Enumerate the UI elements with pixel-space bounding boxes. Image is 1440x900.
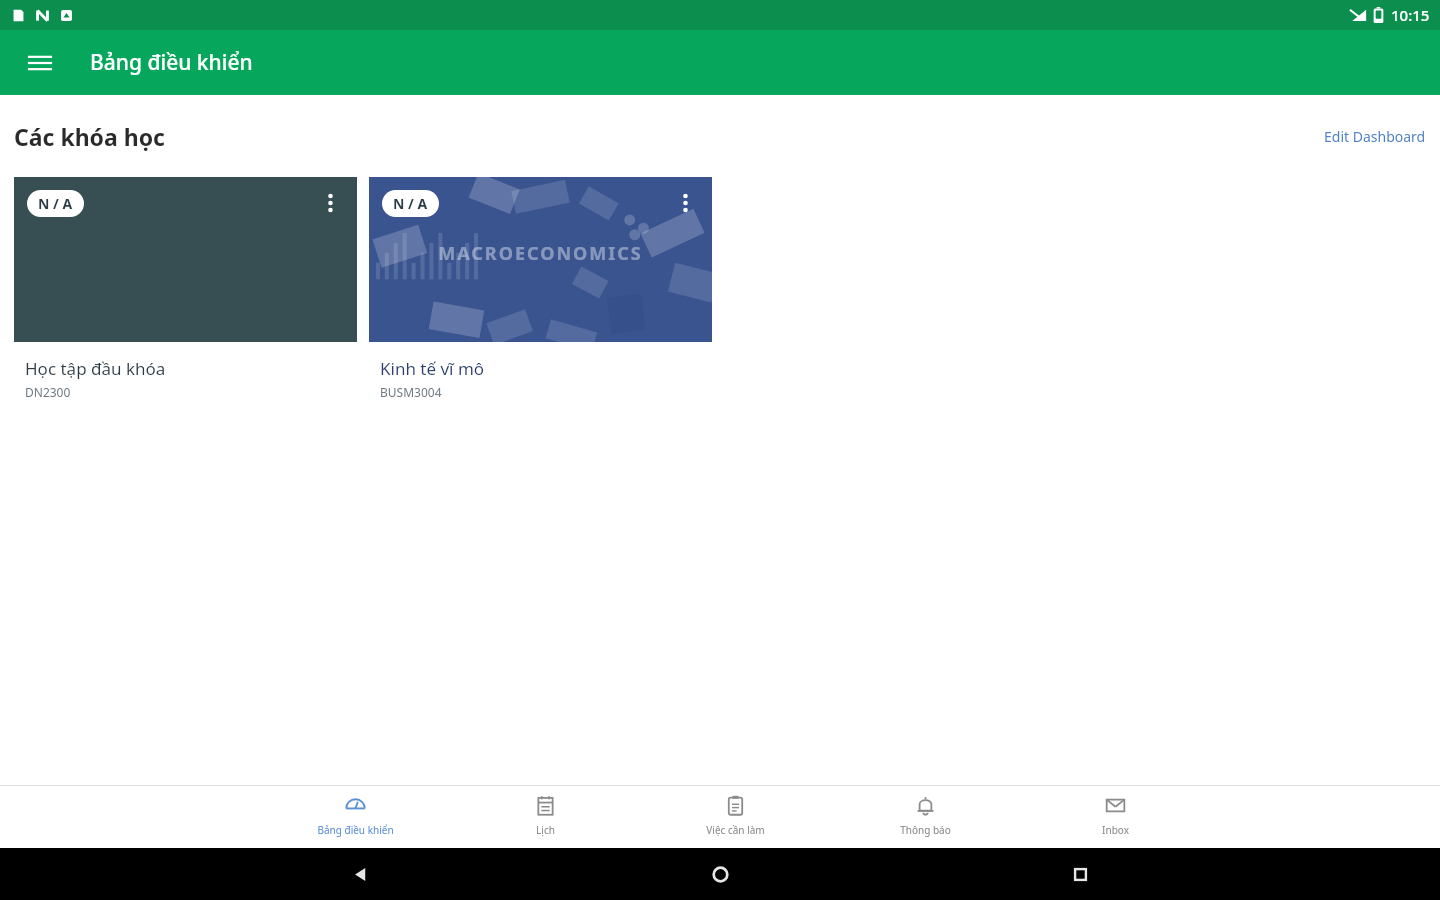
staticText: Lịch xyxy=(536,823,555,837)
staticText: Bảng điều khiển xyxy=(90,48,253,77)
staticText: Thông báo xyxy=(900,823,951,837)
button[interactable]: More options xyxy=(313,186,347,220)
button[interactable]: Menu xyxy=(16,39,64,87)
button[interactable]: Thông báo xyxy=(830,786,1020,837)
staticText: MACROECONOMICS xyxy=(438,241,643,266)
staticText: DN2300 xyxy=(25,384,71,400)
staticText: N / A xyxy=(38,194,73,213)
button[interactable]: Việc cần làm xyxy=(640,786,830,837)
button[interactable]: N / A xyxy=(27,190,84,217)
button[interactable]: N / A xyxy=(14,177,357,524)
button[interactable]: Inbox xyxy=(1020,786,1210,837)
staticText: Các khóa học xyxy=(14,121,165,152)
button[interactable]: Recent apps xyxy=(900,867,1260,882)
staticText: Edit Dashboard xyxy=(1324,127,1426,146)
button[interactable]: Back xyxy=(180,866,540,883)
button[interactable]: Lịch xyxy=(450,786,640,837)
button[interactable]: More options xyxy=(668,186,702,220)
staticText: Inbox xyxy=(1102,823,1129,837)
button[interactable]: MACROECONOMICS xyxy=(369,177,712,524)
staticText: Học tập đầu khóa xyxy=(25,357,166,380)
staticText: BUSM3004 xyxy=(380,384,442,400)
staticText: 10:15 xyxy=(1391,5,1430,25)
staticText: Bảng điều khiển xyxy=(317,823,394,837)
button[interactable]: Home xyxy=(540,866,900,883)
button[interactable]: Edit Dashboard xyxy=(1320,121,1430,152)
button[interactable]: N / A xyxy=(382,190,439,217)
staticText: Kinh tế vĩ mô xyxy=(380,357,485,380)
button[interactable]: Bảng điều khiển xyxy=(260,786,450,837)
staticText: N / A xyxy=(393,194,428,213)
staticText: Việc cần làm xyxy=(706,823,765,837)
